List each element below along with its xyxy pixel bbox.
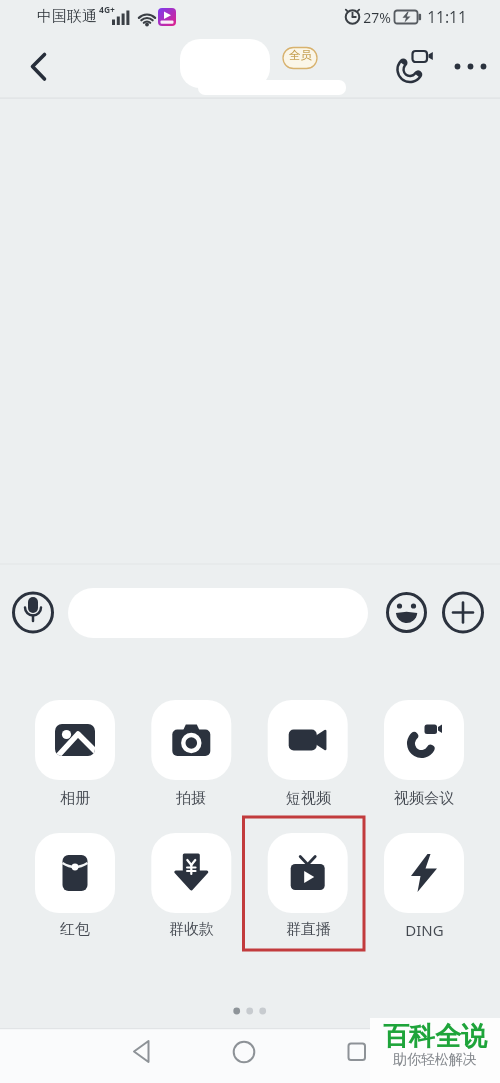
button[interactable] <box>35 833 115 943</box>
button[interactable] <box>384 700 464 810</box>
button[interactable] <box>338 1033 376 1071</box>
button[interactable] <box>387 593 426 632</box>
staticText: 视频会议 <box>394 789 454 808</box>
staticText: 相册 <box>60 789 90 808</box>
staticText: 百科全说 <box>383 1020 487 1053</box>
button[interactable] <box>122 1033 160 1071</box>
staticText: 红包 <box>60 920 90 939</box>
button[interactable] <box>18 44 60 90</box>
button[interactable] <box>225 1033 263 1071</box>
button[interactable] <box>268 833 348 943</box>
staticText: 11:11 <box>427 6 467 27</box>
button[interactable] <box>443 592 484 633</box>
button[interactable] <box>283 47 317 69</box>
staticText: 助你轻松解决 <box>393 1051 477 1069</box>
button[interactable] <box>384 833 464 943</box>
button[interactable] <box>151 833 231 943</box>
button[interactable] <box>390 46 434 88</box>
staticText: 4G+ <box>99 4 115 16</box>
button[interactable] <box>268 700 348 810</box>
button[interactable] <box>68 588 368 638</box>
staticText: 短视频 <box>286 789 331 808</box>
button[interactable] <box>13 592 54 633</box>
button[interactable] <box>448 52 492 82</box>
staticText: 中国联通 <box>37 7 97 26</box>
staticText: 全员 <box>289 48 312 62</box>
staticText: 群直播 <box>286 920 331 939</box>
staticText: DING <box>405 920 444 940</box>
button[interactable] <box>35 700 115 810</box>
staticText: 拍摄 <box>176 789 206 808</box>
button[interactable] <box>151 700 231 810</box>
staticText: 群收款 <box>169 920 214 939</box>
staticText: 27% <box>363 8 391 27</box>
